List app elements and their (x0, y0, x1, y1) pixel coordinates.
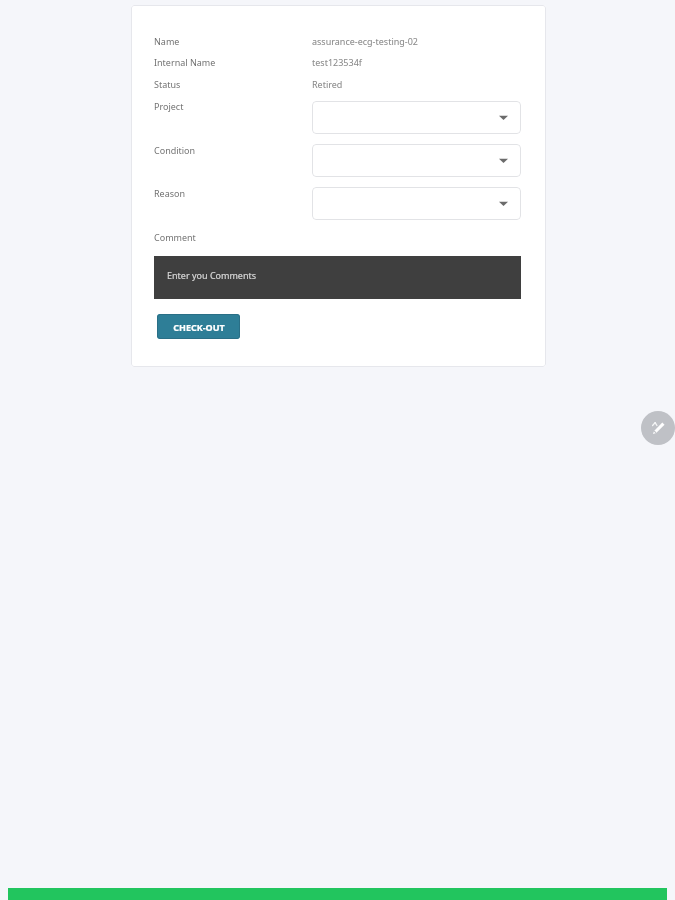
staticText: Status (154, 78, 181, 90)
staticText: Name (154, 35, 180, 47)
staticText: assurance-ecg-testing-02 (312, 35, 419, 47)
staticText: Reason (154, 187, 186, 199)
button[interactable]: Edit (641, 411, 675, 445)
button[interactable]: Project (312, 101, 521, 134)
staticText: Internal Name (154, 56, 216, 68)
button[interactable]: Condition (312, 144, 521, 177)
staticText: Condition (154, 144, 196, 156)
staticText: Project (154, 100, 184, 112)
staticText: Comment (154, 231, 196, 243)
button[interactable]: Enter you Comments (154, 256, 521, 299)
button[interactable]: CHECK-OUT (157, 314, 240, 339)
staticText: Enter you Comments (167, 269, 257, 281)
staticText: Retired (312, 78, 343, 90)
staticText: CHECK-OUT (173, 321, 225, 333)
staticText: test123534f (312, 56, 362, 68)
button[interactable]: Reason (312, 187, 521, 220)
